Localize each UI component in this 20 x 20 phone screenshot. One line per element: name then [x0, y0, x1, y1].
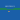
- button[interactable]: [0, 8, 20, 10]
- staticText: Welcome back: [5, 5, 15, 7]
